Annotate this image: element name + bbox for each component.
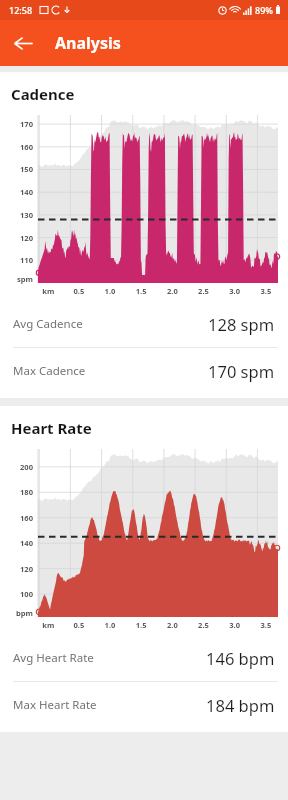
staticText: 128 spm	[208, 313, 275, 335]
staticText: Analysis	[55, 32, 121, 54]
staticText: 12:58	[9, 4, 33, 16]
button[interactable]: Avg Heart Rate	[0, 635, 288, 681]
staticText: Avg Heart Rate	[13, 650, 94, 666]
button[interactable]: Max Cadence	[0, 347, 288, 394]
staticText: 89%	[255, 4, 273, 16]
staticText: Heart Rate	[11, 418, 92, 438]
staticText: 146 bpm	[206, 647, 275, 669]
staticText: 184 bpm	[206, 694, 275, 716]
button[interactable]: Back	[5, 25, 41, 61]
staticText: 170 spm	[208, 360, 275, 382]
staticText: Avg Cadence	[13, 316, 83, 332]
button[interactable]: Avg Cadence	[0, 301, 288, 347]
staticText: Max Cadence	[13, 363, 86, 379]
staticText: Max Heart Rate	[13, 697, 97, 713]
staticText: Cadence	[11, 84, 75, 104]
button[interactable]: Max Heart Rate	[0, 681, 288, 728]
